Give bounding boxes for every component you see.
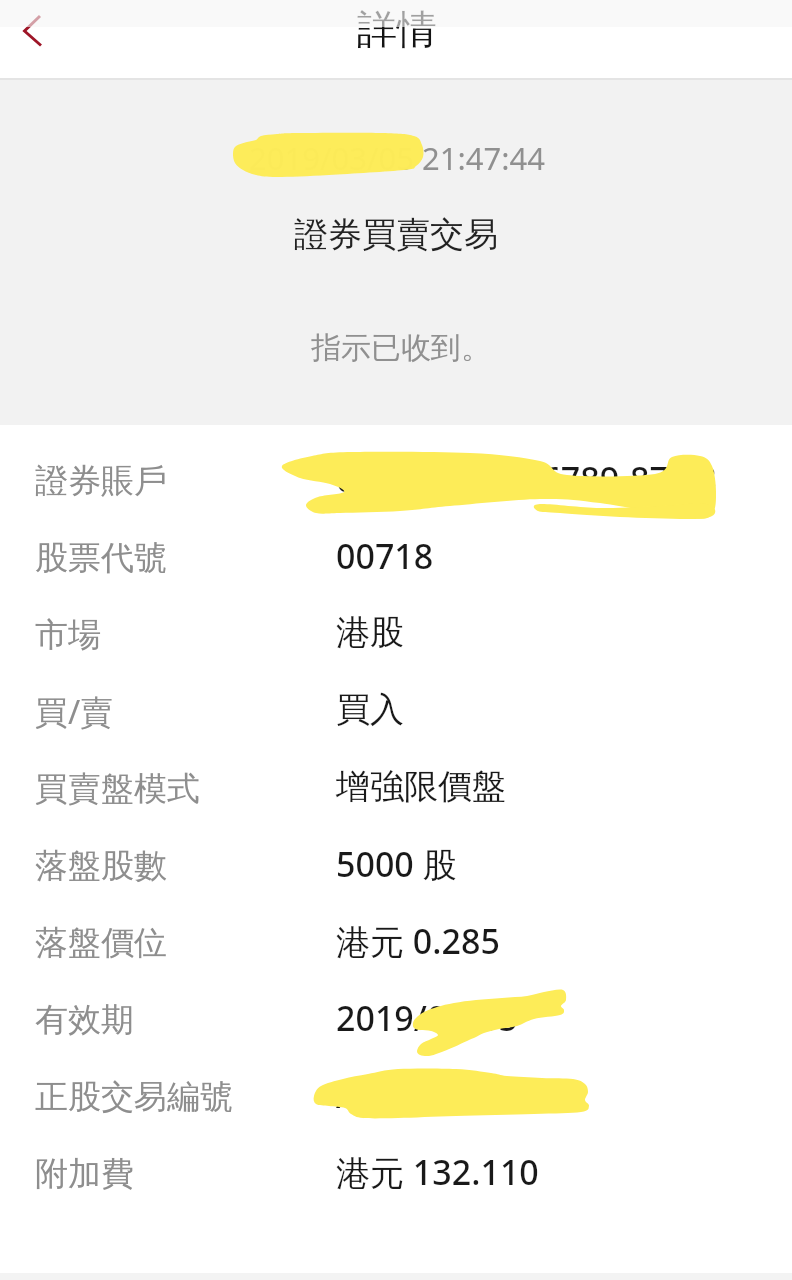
staticText: 買/賣	[35, 689, 114, 734]
staticText: 正股交易編號	[35, 1076, 233, 1118]
staticText: 落盤股數	[35, 845, 167, 887]
staticText: 指示已收到。	[311, 329, 491, 367]
button[interactable]: 買賣盤模式	[0, 750, 792, 827]
button[interactable]: 正股交易編號	[0, 1058, 792, 1135]
button[interactable]: 落盤股數	[0, 827, 792, 904]
staticText: 落盤價位	[35, 922, 167, 964]
staticText: 證券賬戶	[35, 460, 167, 502]
staticText: 附加費	[35, 1153, 134, 1195]
staticText: 港元 132.110	[336, 1149, 539, 1195]
staticText: 港元 0.285	[336, 918, 500, 964]
staticText: 00718	[336, 533, 434, 579]
button[interactable]: 買/賣	[0, 673, 792, 750]
button[interactable]: 附加費	[0, 1135, 792, 1212]
staticText: 增強限價盤	[336, 765, 506, 808]
staticText: 詳情	[357, 4, 437, 54]
staticText: A0012345678	[336, 1072, 553, 1118]
button[interactable]: 市場	[0, 596, 792, 673]
staticText: 買入	[336, 688, 404, 731]
staticText: 買賣盤模式	[35, 768, 200, 810]
button[interactable]: 有效期	[0, 981, 792, 1058]
button[interactable]: Back	[0, 0, 66, 66]
staticText: 港股	[336, 611, 404, 654]
button[interactable]: 落盤價位	[0, 904, 792, 981]
staticText: 市場	[35, 614, 101, 656]
staticText: 2019/03/05	[336, 995, 518, 1041]
button[interactable]: 股票代號	[0, 519, 792, 596]
staticText: 股票代號	[35, 537, 167, 579]
staticText: 有效期	[35, 999, 134, 1041]
button[interactable]: 證券賬戶	[0, 442, 792, 519]
staticText: 030-00123456789-875 8	[336, 456, 717, 502]
staticText: 2019/03/05 21:47:44	[249, 137, 545, 179]
staticText: 5000 股	[336, 841, 457, 887]
staticText: 證券買賣交易	[294, 213, 498, 256]
